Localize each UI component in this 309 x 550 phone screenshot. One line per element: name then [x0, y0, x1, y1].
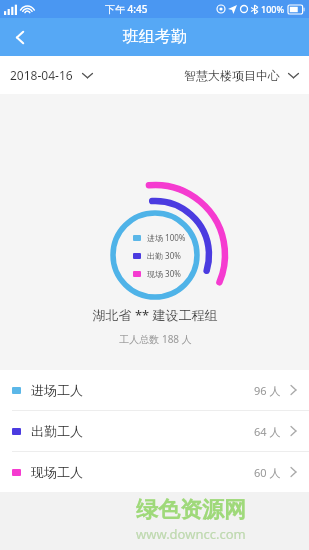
staticText: 2018-04-16	[10, 67, 73, 83]
staticText: 绿色资源网	[136, 496, 246, 524]
staticText: 96 人	[254, 383, 281, 398]
staticText: 现场工人	[31, 464, 83, 480]
button[interactable]: Back	[0, 18, 40, 56]
button[interactable]: 进场工人	[0, 370, 309, 411]
button[interactable]: 2018-04-16	[10, 67, 93, 83]
staticText: 工人总数 188 人	[119, 332, 192, 346]
button[interactable]: 出勤工人	[0, 411, 309, 452]
staticText: 班组考勤	[123, 27, 187, 47]
staticText: 湖北省 ** 建设工程组	[92, 306, 218, 324]
button[interactable]: 智慧大楼项目中心	[184, 68, 299, 83]
staticText: 出勤 30%	[147, 250, 181, 261]
button[interactable]: 现场工人	[0, 452, 309, 492]
staticText: 下午 4:45	[105, 2, 148, 16]
staticText: 64 人	[254, 424, 281, 439]
staticText: 60 人	[254, 465, 281, 480]
staticText: 现场 30%	[147, 268, 181, 279]
staticText: 智慧大楼项目中心	[184, 68, 280, 83]
staticText: 进场 100%	[147, 232, 186, 243]
staticText: 100%	[261, 3, 285, 15]
staticText: 进场工人	[31, 382, 83, 398]
staticText: www.downcc.com	[136, 525, 246, 543]
staticText: 出勤工人	[31, 423, 83, 439]
